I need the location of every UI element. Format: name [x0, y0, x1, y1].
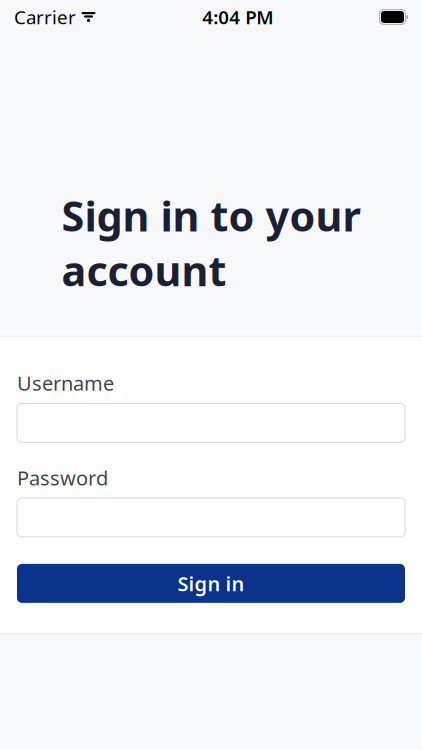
button[interactable] [17, 498, 405, 537]
staticText: Password [17, 464, 108, 491]
staticText: Carrier [14, 5, 76, 29]
button[interactable]: Sign in [17, 564, 405, 603]
staticText: 4:04 PM [202, 5, 273, 29]
staticText: Username [17, 370, 114, 396]
staticText: Sign in to your account [61, 188, 360, 298]
button[interactable] [17, 403, 405, 442]
staticText: Sign in [177, 570, 244, 597]
